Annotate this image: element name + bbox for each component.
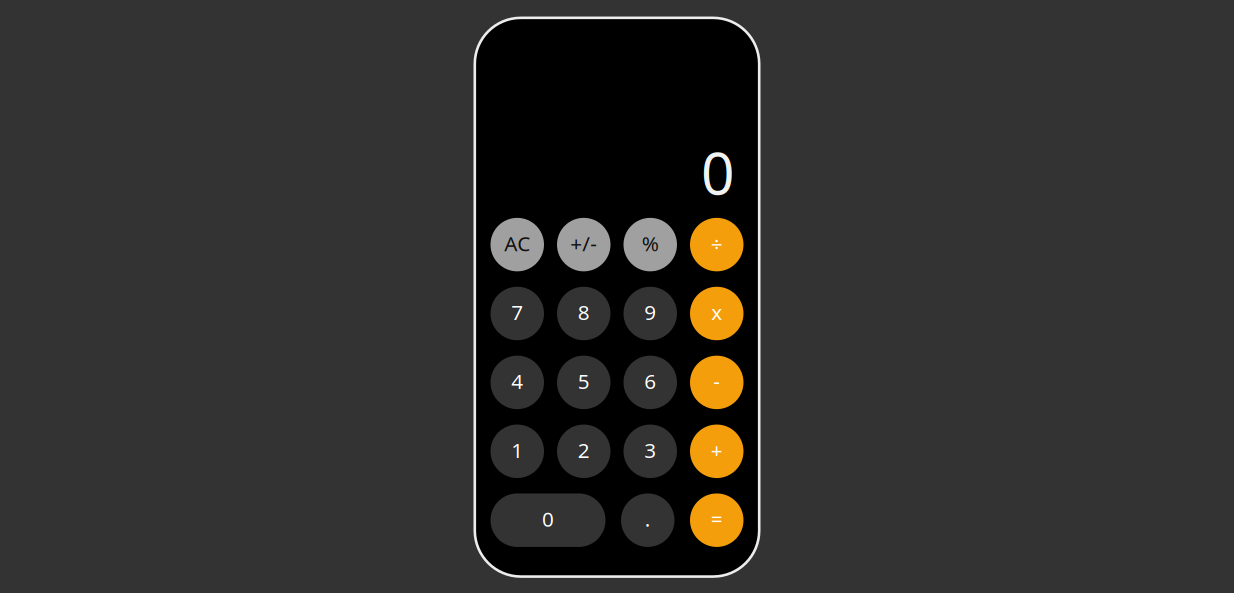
button[interactable]: x: [690, 287, 743, 340]
button[interactable]: 6: [623, 356, 677, 409]
staticText: AC: [504, 229, 530, 257]
staticText: 9: [644, 298, 656, 326]
staticText: -: [713, 367, 720, 395]
button[interactable]: =: [690, 493, 743, 547]
button[interactable]: 5: [557, 356, 610, 409]
button[interactable]: -: [690, 356, 743, 409]
staticText: =: [711, 505, 723, 533]
staticText: ÷: [711, 229, 723, 257]
button[interactable]: 1: [490, 425, 544, 478]
staticText: 0: [542, 505, 554, 533]
staticText: .: [645, 505, 651, 533]
staticText: 0: [701, 133, 735, 211]
button[interactable]: AC: [490, 218, 544, 271]
button[interactable]: 8: [557, 287, 610, 340]
staticText: 7: [511, 298, 523, 326]
staticText: 6: [644, 367, 656, 395]
button[interactable]: +: [690, 425, 743, 478]
staticText: 4: [511, 367, 523, 395]
button[interactable]: 2: [557, 425, 610, 478]
button[interactable]: 4: [490, 356, 544, 409]
button[interactable]: ÷: [690, 218, 743, 271]
staticText: 8: [578, 298, 590, 326]
button[interactable]: %: [623, 218, 677, 271]
button[interactable]: 0: [490, 493, 605, 547]
staticText: x: [711, 298, 722, 326]
button[interactable]: 7: [490, 287, 544, 340]
staticText: 2: [578, 436, 590, 464]
staticText: +/-: [570, 229, 597, 257]
staticText: 1: [511, 436, 523, 464]
button[interactable]: .: [621, 493, 674, 547]
staticText: 5: [578, 367, 590, 395]
button[interactable]: 3: [623, 425, 677, 478]
staticText: +: [711, 436, 723, 464]
staticText: %: [642, 229, 659, 257]
button[interactable]: +/-: [557, 218, 610, 271]
staticText: 3: [644, 436, 656, 464]
button[interactable]: 9: [623, 287, 677, 340]
